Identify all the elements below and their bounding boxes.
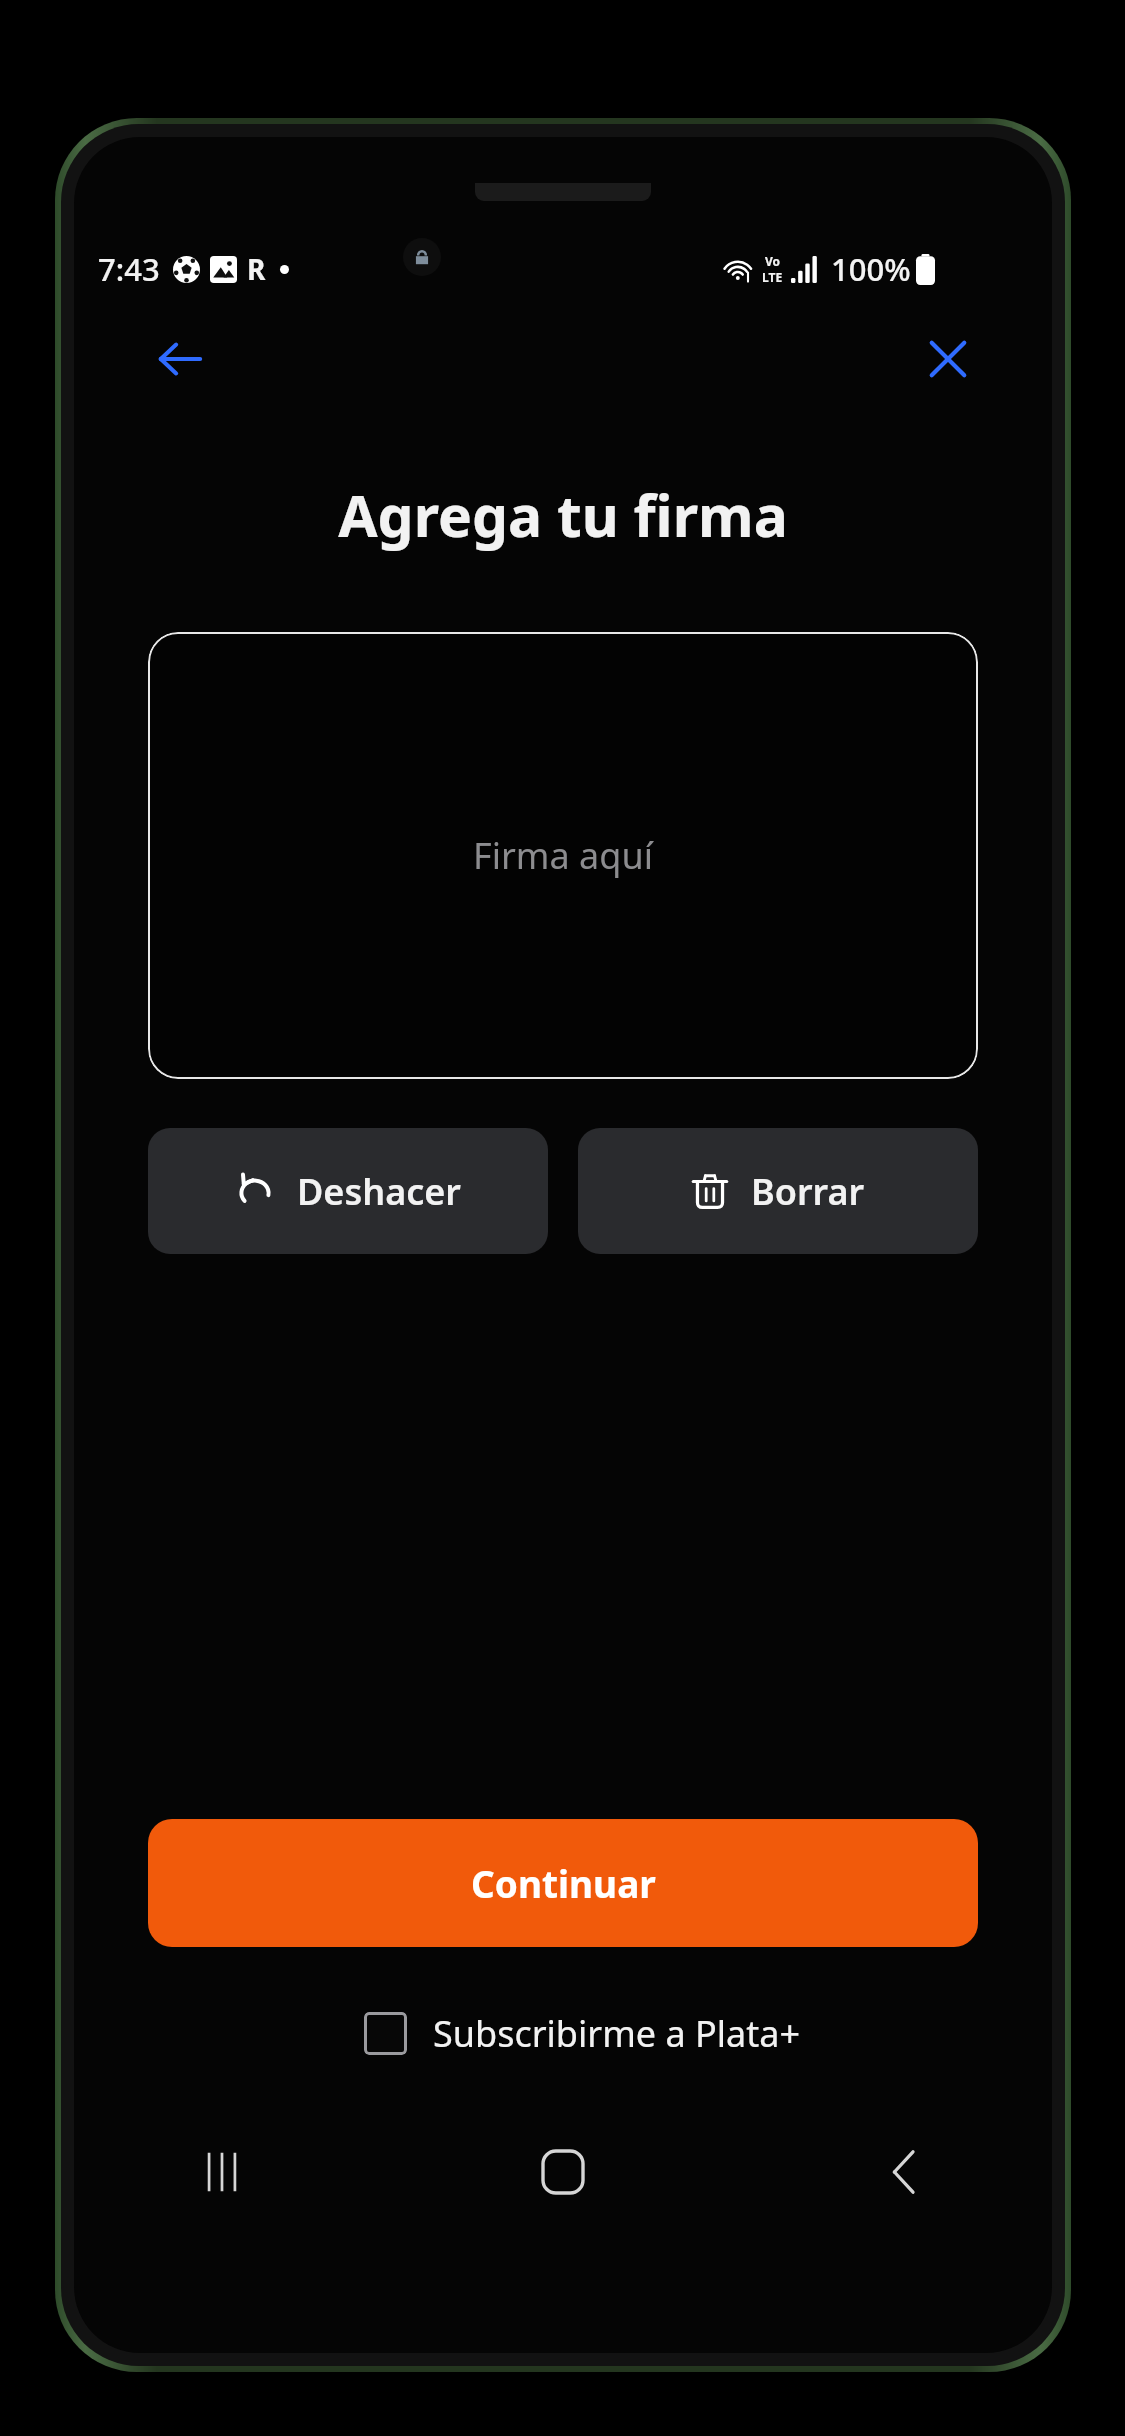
staticText: 100% xyxy=(831,248,911,290)
staticText: 7:43 xyxy=(98,248,160,290)
staticText: Borrar xyxy=(751,1167,865,1216)
staticText: Vo xyxy=(765,253,781,269)
button[interactable]: Recent apps xyxy=(174,2124,270,2220)
staticText: Subscribirme a Plata+ xyxy=(433,2009,801,2058)
staticText: LTE xyxy=(762,269,783,285)
button[interactable]: Borrar xyxy=(578,1128,978,1254)
button[interactable]: Home xyxy=(515,2124,611,2220)
button[interactable]: Signature pad xyxy=(148,632,978,1079)
button[interactable]: Subscribirme a Plata+ xyxy=(364,1995,801,2071)
button[interactable]: Close xyxy=(896,307,1000,411)
staticText: Agrega tu firma xyxy=(338,476,788,554)
button[interactable]: Continuar xyxy=(148,1819,978,1947)
staticText: Firma aquí xyxy=(473,831,653,880)
button[interactable]: Back xyxy=(128,307,232,411)
staticText: Continuar xyxy=(471,1858,656,1908)
button[interactable]: Deshacer xyxy=(148,1128,548,1254)
button[interactable]: Back xyxy=(856,2124,952,2220)
staticText: R xyxy=(247,250,266,288)
staticText: Deshacer xyxy=(297,1167,461,1216)
